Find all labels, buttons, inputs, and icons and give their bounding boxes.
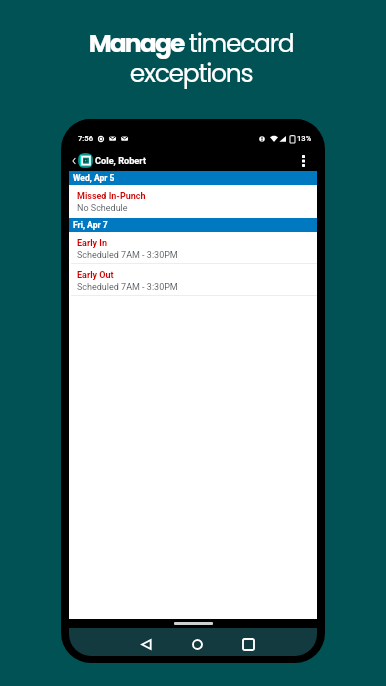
staticText: Early Out bbox=[77, 270, 114, 281]
button[interactable]: Early In bbox=[69, 232, 317, 264]
staticText: 13% bbox=[297, 134, 312, 143]
button[interactable]: Back bbox=[135, 632, 157, 656]
button[interactable]: Early Out bbox=[69, 264, 317, 296]
staticText: Scheduled 7AM - 3:30PM bbox=[77, 282, 178, 293]
staticText: Early In bbox=[77, 238, 108, 249]
button[interactable]: More options bbox=[298, 151, 308, 171]
staticText: Fri, Apr 7 bbox=[73, 220, 108, 230]
button[interactable]: Navigate up bbox=[70, 151, 77, 171]
button[interactable]: Home bbox=[186, 632, 208, 656]
staticText: 7:56 bbox=[78, 134, 93, 143]
staticText: No Schedule bbox=[77, 203, 128, 214]
staticText: Scheduled 7AM - 3:30PM bbox=[77, 250, 178, 261]
staticText: Wed, Apr 5 bbox=[73, 173, 115, 183]
button[interactable]: Recent apps bbox=[237, 632, 259, 656]
staticText: Cole, Robert bbox=[95, 155, 147, 166]
staticText: Missed In-Punch bbox=[77, 191, 146, 202]
button[interactable]: Missed In-Punch bbox=[69, 185, 317, 218]
staticText: Manage timecard exceptions bbox=[82, 26, 300, 91]
